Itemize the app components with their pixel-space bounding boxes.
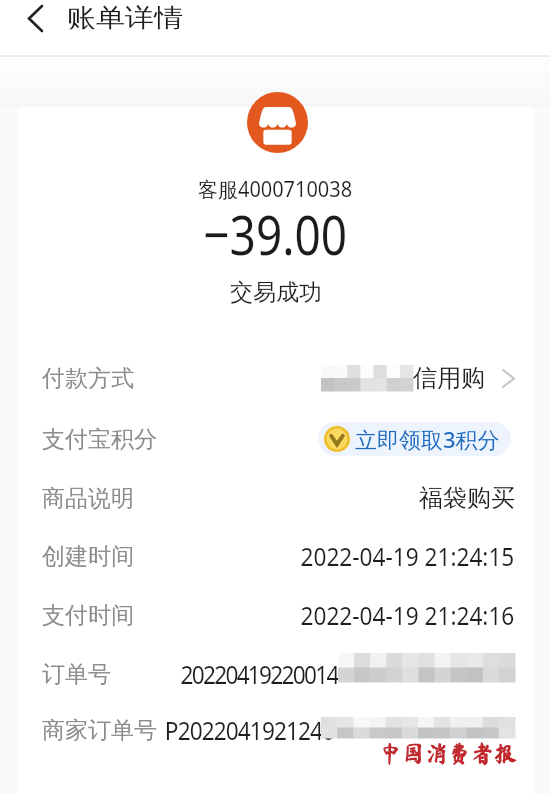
- staticText: 订单号: [42, 660, 111, 689]
- button[interactable]: Back: [6, 0, 62, 55]
- staticText: P2022041921240: [165, 712, 335, 747]
- button[interactable]: 订单号: [17, 650, 534, 698]
- staticText: 中国消费者报: [379, 742, 517, 765]
- staticText: 支付宝积分: [42, 425, 157, 454]
- staticText: 20220419220014: [180, 656, 338, 691]
- staticText: 2022-04-19 21:24:16: [300, 597, 515, 632]
- staticText: 客服4000710038: [198, 175, 353, 204]
- staticText: 支付时间: [42, 601, 134, 630]
- staticText: 商品说明: [42, 484, 134, 513]
- button[interactable]: 立即领取3积分: [318, 422, 511, 456]
- staticText: 创建时间: [42, 542, 134, 571]
- staticText: −39.00: [203, 196, 348, 271]
- staticText: 交易成功: [230, 278, 322, 307]
- staticText: 2022-04-19 21:24:15: [300, 538, 515, 573]
- staticText: 立即领取3积分: [355, 424, 500, 454]
- button[interactable]: 支付时间: [17, 591, 534, 639]
- button[interactable]: 付款方式: [17, 354, 534, 402]
- staticText: 账单详情: [67, 2, 183, 29]
- button[interactable]: 商品说明: [17, 474, 534, 522]
- button[interactable]: 商家订单号: [17, 706, 534, 754]
- button[interactable]: 支付宝积分: [17, 415, 534, 463]
- button[interactable]: 创建时间: [17, 532, 534, 580]
- staticText: 信用购: [413, 363, 485, 393]
- staticText: 付款方式: [42, 364, 134, 393]
- staticText: 福袋购买: [419, 483, 515, 513]
- staticText: 商家订单号: [42, 716, 157, 745]
